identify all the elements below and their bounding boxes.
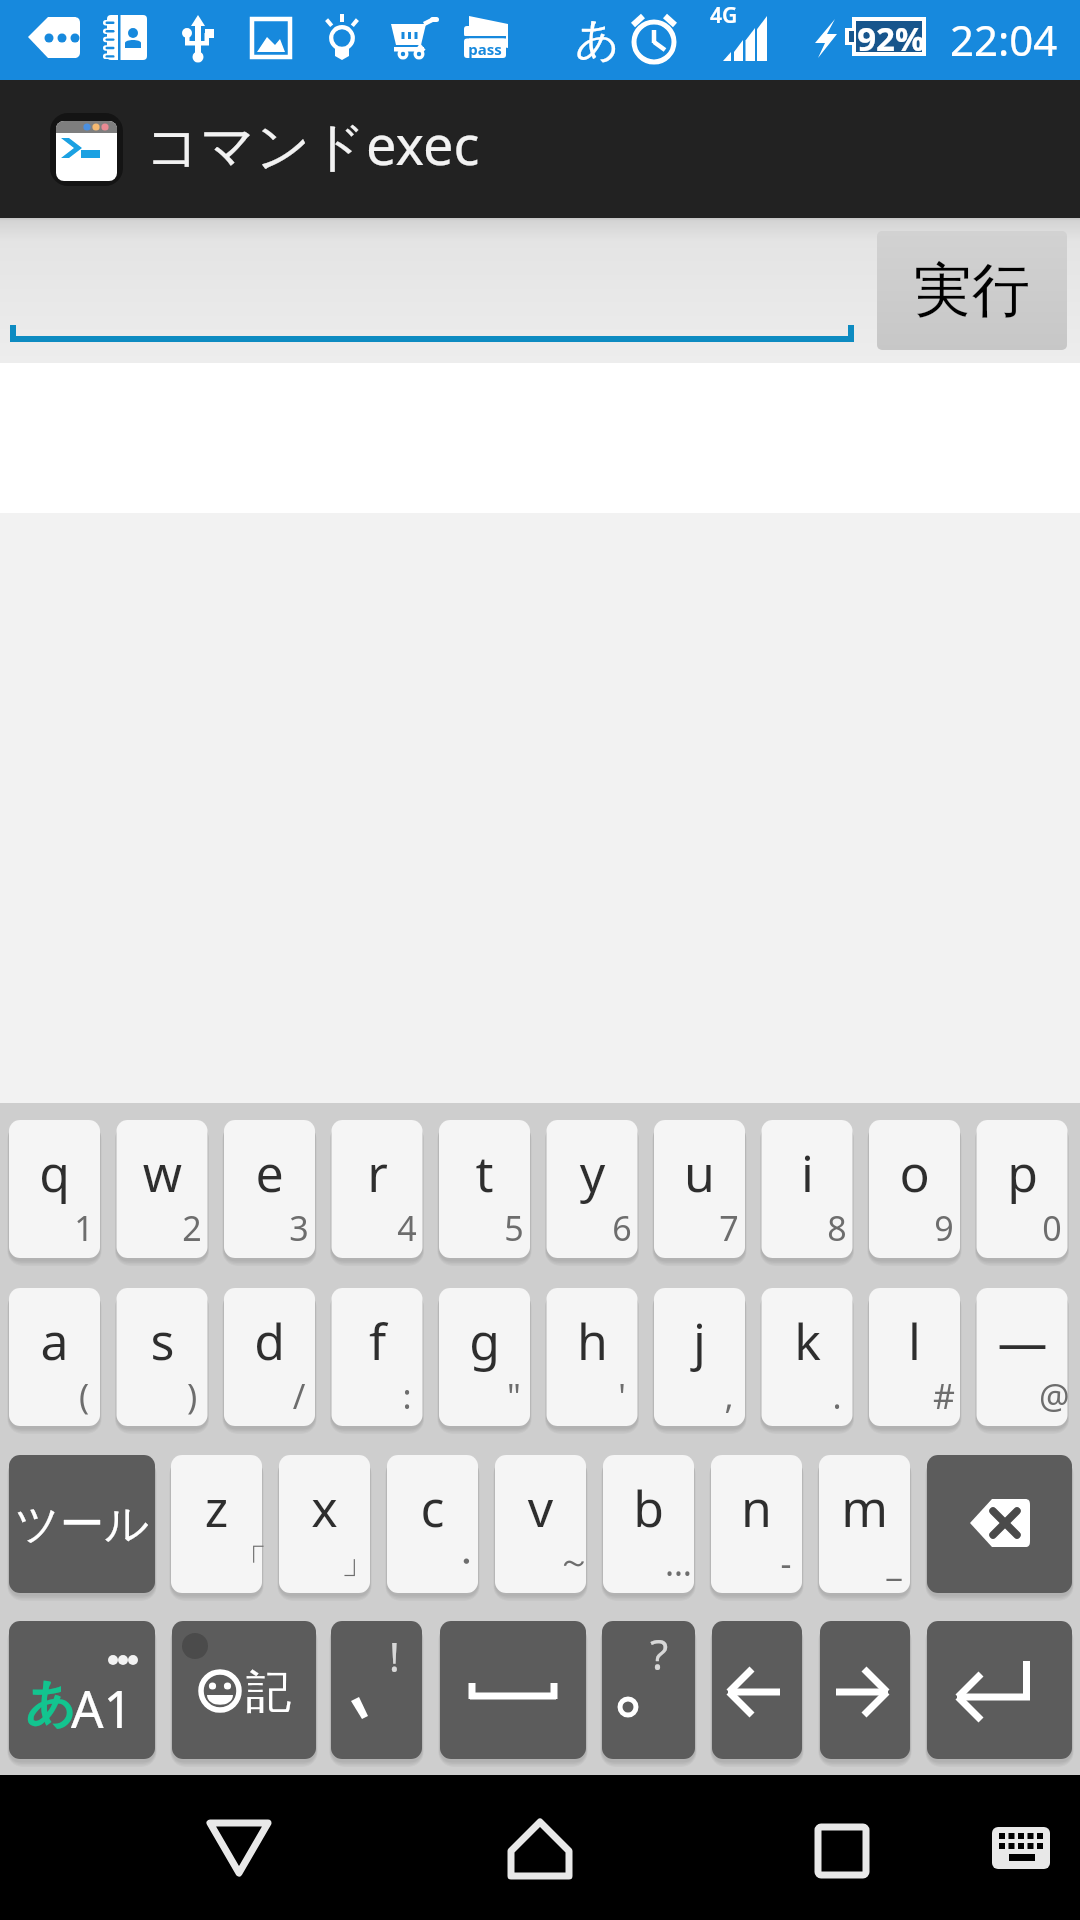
staticText: あ [25, 1672, 77, 1735]
staticText: 2 [179, 1205, 205, 1251]
button[interactable]: z [171, 1455, 262, 1593]
button[interactable]: s [117, 1288, 208, 1426]
staticText: b [603, 1474, 694, 1542]
staticText: v [495, 1474, 586, 1542]
button[interactable]: w [117, 1120, 208, 1258]
button[interactable]: l [869, 1288, 960, 1426]
staticText: ' [609, 1373, 635, 1419]
button[interactable]: ! [331, 1621, 422, 1759]
staticText: r [332, 1139, 423, 1207]
staticText: ? [650, 1625, 669, 1682]
button[interactable]: Recent apps [782, 1775, 902, 1920]
button[interactable]: 実行 [877, 231, 1067, 350]
button[interactable]: 記 [172, 1621, 316, 1759]
button[interactable]: Enter [927, 1621, 1072, 1759]
button[interactable] [0, 218, 860, 363]
button[interactable]: ツール [9, 1455, 155, 1593]
staticText: i [762, 1139, 853, 1207]
staticText: 8 [824, 1205, 850, 1251]
staticText: o [869, 1139, 960, 1207]
button[interactable]: g [439, 1288, 530, 1426]
staticText: w [117, 1139, 208, 1207]
button[interactable]: i [762, 1120, 853, 1258]
staticText: g [439, 1307, 530, 1375]
staticText: # [931, 1373, 957, 1419]
staticText: 1 [71, 1205, 97, 1251]
staticText: pass [466, 39, 504, 59]
staticText: 92% [855, 16, 927, 61]
staticText: _ [881, 1540, 907, 1586]
button[interactable]: q [9, 1120, 100, 1258]
staticText: c [387, 1474, 478, 1542]
staticText: u [654, 1139, 745, 1207]
button[interactable]: e [224, 1120, 315, 1258]
staticText: h [547, 1307, 638, 1375]
staticText: f [332, 1307, 423, 1375]
button[interactable]: Switch keyboard [970, 1775, 1070, 1920]
button[interactable]: t [439, 1120, 530, 1258]
button[interactable]: Cursor left [712, 1621, 802, 1759]
button[interactable]: — [977, 1288, 1068, 1426]
staticText: 4G [710, 1, 738, 30]
staticText: 実行 [914, 254, 1030, 327]
staticText: コマンドexec [145, 107, 480, 181]
staticText: ! [389, 1629, 400, 1683]
staticText: a [9, 1307, 100, 1375]
staticText: k [762, 1307, 853, 1375]
staticText: n [711, 1474, 802, 1542]
button[interactable]: Home [480, 1775, 600, 1920]
button[interactable]: Backspace [927, 1455, 1072, 1593]
button[interactable]: a [9, 1288, 100, 1426]
staticText: 9 [931, 1205, 957, 1251]
button[interactable]: f [332, 1288, 423, 1426]
staticText: / [286, 1373, 312, 1419]
button[interactable]: v [495, 1455, 586, 1593]
staticText: あ [575, 12, 621, 67]
staticText: z [171, 1474, 262, 1542]
button[interactable]: j [654, 1288, 745, 1426]
button[interactable]: y [547, 1120, 638, 1258]
staticText: " [501, 1373, 527, 1419]
staticText: A1 [71, 1673, 133, 1742]
button[interactable]: u [654, 1120, 745, 1258]
button[interactable]: あ [9, 1621, 155, 1759]
button[interactable]: x [279, 1455, 370, 1593]
staticText: x [279, 1474, 370, 1542]
button[interactable]: c [387, 1455, 478, 1593]
button[interactable]: r [332, 1120, 423, 1258]
staticText: - [773, 1540, 799, 1586]
staticText: 記 [246, 1664, 291, 1721]
staticText: l [869, 1307, 960, 1375]
button[interactable]: d [224, 1288, 315, 1426]
staticText: 0 [1039, 1205, 1065, 1251]
button[interactable]: ? [602, 1621, 695, 1759]
staticText: ( [71, 1373, 97, 1419]
staticText: t [439, 1139, 530, 1207]
staticText: . [824, 1373, 850, 1419]
staticText: @ [1039, 1373, 1065, 1419]
staticText: 6 [609, 1205, 635, 1251]
staticText: ～ [557, 1540, 583, 1583]
button[interactable]: Space [440, 1621, 586, 1759]
staticText: , [716, 1373, 742, 1419]
staticText: 「 [233, 1540, 259, 1583]
button[interactable]: Back [180, 1775, 300, 1920]
staticText: 」 [341, 1540, 367, 1583]
staticText: 3 [286, 1205, 312, 1251]
button[interactable]: n [711, 1455, 802, 1593]
staticText: y [547, 1139, 638, 1207]
button[interactable]: b [603, 1455, 694, 1593]
staticText: — [977, 1307, 1068, 1375]
staticText: : [394, 1373, 420, 1419]
staticText: 22:04 [950, 11, 1058, 68]
button[interactable]: m [819, 1455, 910, 1593]
button[interactable]: h [547, 1288, 638, 1426]
button[interactable]: o [869, 1120, 960, 1258]
button[interactable]: p [977, 1120, 1068, 1258]
button[interactable]: Cursor right [820, 1621, 910, 1759]
staticText: ・ [449, 1540, 475, 1583]
staticText: m [819, 1474, 910, 1542]
button[interactable]: k [762, 1288, 853, 1426]
staticText: d [224, 1307, 315, 1375]
staticText: e [224, 1139, 315, 1207]
